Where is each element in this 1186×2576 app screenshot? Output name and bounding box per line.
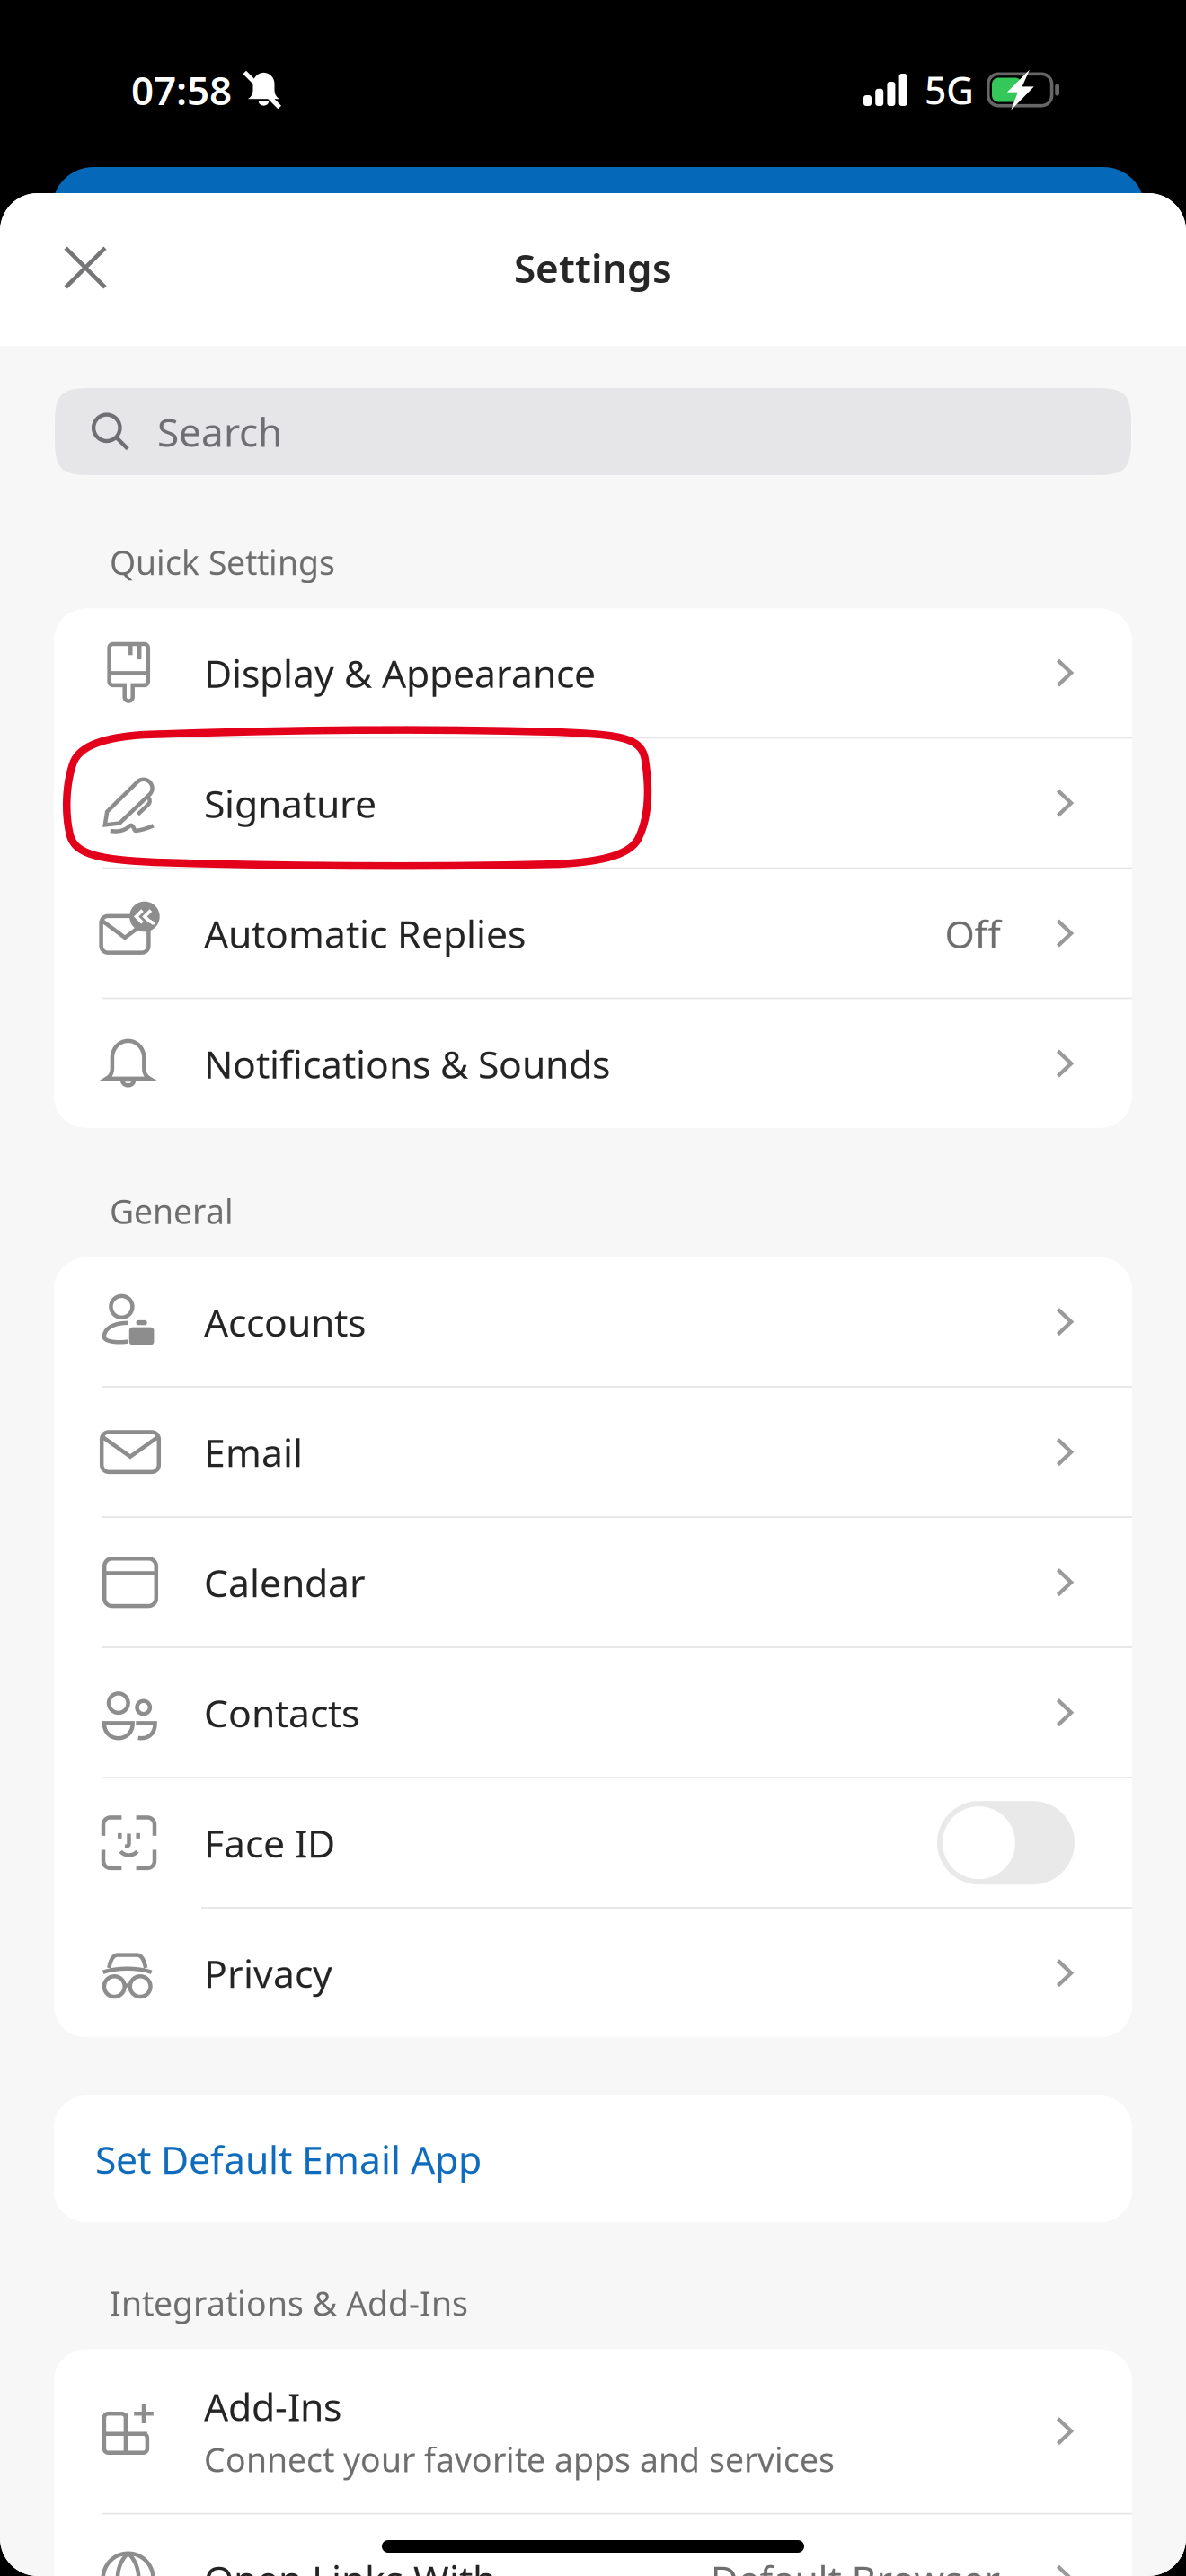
staticText: Search (157, 405, 282, 458)
button[interactable]: Display & Appearance (54, 609, 1132, 737)
staticText: Signature (204, 778, 376, 828)
staticText: Off (945, 908, 1000, 959)
button[interactable]: Automatic Replies (54, 869, 1132, 998)
staticText: Face ID (204, 1817, 335, 1868)
staticText: Notifications & Sounds (204, 1038, 610, 1089)
staticText: Calendar (204, 1557, 366, 1608)
button[interactable]: Add-Ins (54, 2349, 1132, 2513)
staticText: Default Browser (710, 2553, 1000, 2576)
staticText: Integrations & Add-Ins (110, 2281, 468, 2325)
staticText: Privacy (204, 1948, 332, 1998)
staticText: General (110, 1189, 234, 1233)
staticText: Add-Ins (204, 2381, 341, 2432)
button[interactable]: Close (36, 218, 135, 317)
staticText: Settings (514, 241, 672, 294)
button[interactable]: Notifications & Sounds (54, 999, 1132, 1128)
button[interactable]: Privacy (54, 1909, 1132, 2037)
button[interactable]: Accounts (54, 1258, 1132, 1386)
staticText: Display & Appearance (204, 647, 596, 698)
staticText: Open Links With (204, 2553, 496, 2576)
staticText: 5G (925, 64, 974, 115)
staticText: Quick Settings (110, 540, 335, 584)
button[interactable]: Set Default Email App (54, 2096, 1132, 2222)
staticText: Email (204, 1427, 303, 1478)
button[interactable]: Calendar (54, 1518, 1132, 1647)
button[interactable]: Open Links With (54, 2515, 1132, 2576)
staticText: Automatic Replies (204, 908, 526, 959)
staticText: Contacts (204, 1687, 359, 1738)
staticText: Set Default Email App (95, 2133, 482, 2184)
staticText: Accounts (204, 1296, 366, 1347)
button[interactable]: Face ID (937, 1801, 1075, 1885)
staticText: Connect your favorite apps and services (204, 2437, 835, 2482)
button[interactable]: Contacts (54, 1648, 1132, 1777)
button[interactable]: Email (54, 1388, 1132, 1516)
button[interactable]: Search (0, 388, 1186, 475)
button[interactable]: Signature (54, 739, 1132, 867)
staticText: 07:58 (131, 64, 232, 116)
